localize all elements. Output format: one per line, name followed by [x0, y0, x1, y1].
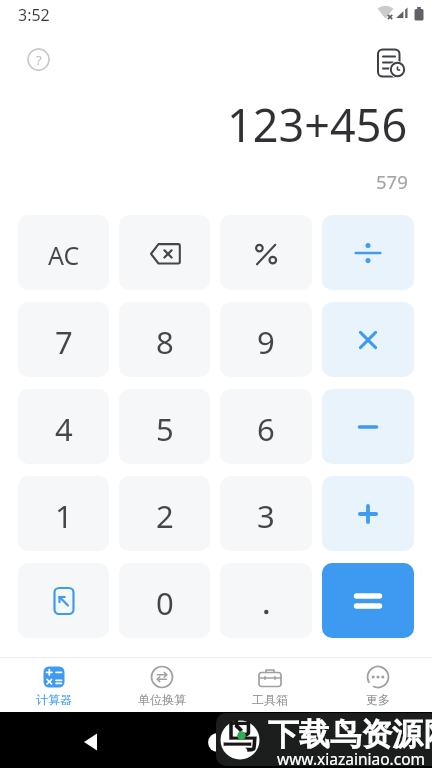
staticText: 579: [376, 169, 408, 194]
button[interactable]: 1: [18, 476, 109, 551]
staticText: 3: [257, 495, 275, 537]
button[interactable]: 单位换算: [108, 658, 216, 712]
button[interactable]: 7: [18, 302, 109, 377]
button[interactable]: 2: [119, 476, 210, 551]
button[interactable]: 更多: [324, 658, 432, 712]
staticText: 3:52: [18, 4, 50, 26]
button[interactable]: 工具箱: [216, 658, 324, 712]
button[interactable]: 3: [220, 476, 312, 551]
button[interactable]: [322, 476, 414, 551]
button[interactable]: [372, 44, 410, 82]
button[interactable]: 计算器: [0, 658, 108, 712]
button[interactable]: ?: [27, 48, 50, 71]
button[interactable]: 9: [220, 302, 312, 377]
staticText: 5: [156, 408, 174, 450]
button[interactable]: [322, 302, 414, 377]
button[interactable]: 8: [119, 302, 210, 377]
button[interactable]: [220, 563, 312, 638]
staticText: 1: [55, 495, 73, 537]
staticText: 7: [55, 321, 73, 363]
staticText: ?: [36, 51, 42, 69]
button[interactable]: [119, 215, 210, 290]
staticText: 9: [257, 321, 275, 363]
staticText: 4: [55, 408, 73, 450]
staticText: www.xiazainiao.com: [277, 748, 426, 766]
staticText: 2: [156, 495, 174, 537]
button[interactable]: [322, 389, 414, 464]
button[interactable]: 4: [18, 389, 109, 464]
button[interactable]: [322, 215, 414, 290]
staticText: 工具箱: [252, 692, 288, 707]
staticText: 下载鸟资源网: [268, 715, 432, 754]
button[interactable]: 6: [220, 389, 312, 464]
staticText: 6: [257, 408, 275, 450]
staticText: AC: [48, 238, 80, 272]
button[interactable]: 5: [119, 389, 210, 464]
button[interactable]: [18, 563, 109, 638]
staticText: 鸟: [223, 715, 257, 758]
staticText: 更多: [366, 692, 390, 707]
staticText: 计算器: [36, 692, 72, 707]
staticText: 单位换算: [138, 692, 186, 707]
button[interactable]: [220, 215, 312, 290]
button[interactable]: [322, 563, 414, 638]
staticText: 123+456: [227, 94, 408, 155]
button[interactable]: 0: [119, 563, 210, 638]
button[interactable]: AC: [18, 215, 109, 290]
staticText: 8: [156, 321, 174, 363]
staticText: 0: [156, 582, 174, 624]
